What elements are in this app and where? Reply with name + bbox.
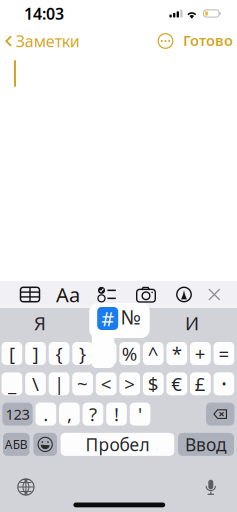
button[interactable]: ' — [130, 403, 150, 426]
staticText: £ — [195, 371, 206, 396]
staticText: \ — [32, 371, 39, 396]
button[interactable]: АБВ — [3, 433, 30, 456]
button[interactable]: Ввод — [178, 433, 234, 456]
button[interactable]: = — [214, 342, 234, 365]
button[interactable]: < — [96, 372, 116, 395]
staticText: ] — [32, 341, 38, 366]
staticText: 123 — [5, 404, 29, 424]
button[interactable]: Next keyboard — [10, 475, 42, 499]
button[interactable]: ^ — [143, 342, 164, 365]
staticText: + — [195, 341, 206, 366]
button[interactable]: ~ — [72, 372, 93, 395]
button[interactable]: > — [119, 372, 140, 395]
button[interactable]: Close keyboard — [195, 281, 233, 308]
staticText: Заметки — [16, 30, 80, 52]
button[interactable]: Format — [49, 281, 87, 308]
button[interactable]: Checklist — [88, 281, 126, 308]
staticText: Я — [34, 311, 46, 335]
button[interactable]: Пробел — [61, 433, 174, 456]
staticText: ! — [114, 402, 119, 426]
staticText: Aa — [56, 281, 80, 308]
button[interactable]: , — [59, 403, 80, 426]
staticText: И — [185, 311, 199, 335]
button[interactable]: Delete — [206, 403, 234, 426]
staticText: > — [124, 371, 135, 396]
staticText: $ — [148, 371, 159, 396]
button[interactable]: ? — [83, 403, 103, 426]
button[interactable]: } — [72, 342, 93, 365]
staticText: Ввод — [185, 433, 227, 456]
button[interactable]: $ — [143, 372, 164, 395]
button[interactable]: 123 — [2, 403, 33, 426]
button[interactable]: More options — [153, 29, 177, 53]
button[interactable]: Заметки — [0, 24, 86, 58]
staticText: № — [120, 303, 140, 330]
staticText: 14:03 — [24, 3, 64, 24]
staticText: | — [54, 371, 64, 396]
staticText: ^ — [148, 341, 159, 366]
staticText: . — [43, 402, 48, 426]
staticText: ' — [138, 402, 142, 426]
staticText: * — [172, 341, 182, 366]
button[interactable]: + — [190, 342, 211, 365]
button[interactable]: % — [119, 342, 140, 365]
button[interactable]: | — [49, 372, 69, 395]
button[interactable]: . — [35, 403, 56, 426]
staticText: € — [171, 371, 182, 396]
button[interactable]: Camera — [127, 281, 165, 308]
button[interactable]: Готово — [175, 24, 237, 56]
staticText: [ — [9, 341, 15, 366]
button[interactable]: _ — [2, 372, 22, 395]
staticText: · — [221, 369, 227, 399]
button[interactable]: € — [166, 372, 187, 395]
button[interactable]: Emoji — [33, 433, 57, 456]
button[interactable]: \ — [25, 372, 46, 395]
button[interactable]: Table — [11, 281, 49, 308]
staticText: Готово — [183, 30, 233, 50]
button[interactable]: · — [214, 372, 234, 395]
staticText: = — [218, 341, 229, 366]
staticText: , — [67, 402, 72, 426]
button[interactable] — [96, 342, 116, 365]
button[interactable]: £ — [190, 372, 211, 395]
button[interactable]: ! — [106, 403, 127, 426]
staticText: ? — [89, 402, 97, 426]
button[interactable]: [ — [2, 342, 22, 365]
staticText: АБВ — [5, 436, 28, 452]
staticText: _ — [8, 371, 16, 396]
button[interactable]: * — [166, 342, 187, 365]
staticText: < — [101, 371, 112, 396]
button[interactable]: ] — [25, 342, 46, 365]
staticText: ~ — [77, 371, 88, 396]
staticText: Пробел — [85, 433, 149, 456]
staticText: { — [56, 341, 63, 366]
button[interactable]: Markup — [165, 281, 203, 308]
staticText: } — [79, 341, 86, 366]
button[interactable]: Dictation — [195, 472, 227, 496]
staticText: % — [122, 341, 138, 366]
button[interactable]: { — [49, 342, 69, 365]
staticText: # — [101, 305, 114, 332]
